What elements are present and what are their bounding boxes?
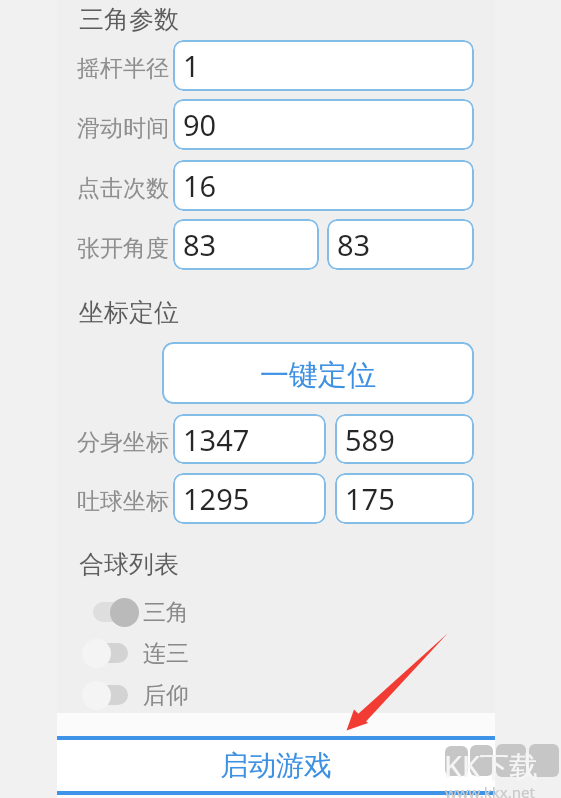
staticText: www.kkx.net	[445, 782, 535, 798]
button[interactable]: 83	[173, 219, 319, 270]
staticText: 90	[183, 105, 217, 144]
button[interactable]: 三角	[86, 595, 206, 629]
staticText: 坐标定位	[79, 297, 179, 328]
button[interactable]: 83	[327, 219, 474, 270]
staticText: 一键定位	[260, 357, 376, 394]
staticText: 1295	[183, 479, 250, 518]
staticText: 吐球坐标	[77, 487, 169, 516]
staticText: 三角参数	[79, 4, 179, 35]
staticText: KK下载	[444, 746, 538, 786]
staticText: 589	[345, 420, 395, 459]
staticText: 张开角度	[77, 234, 169, 263]
button[interactable]: 589	[335, 414, 474, 464]
button[interactable]: 1347	[173, 414, 326, 464]
button[interactable]: 1295	[173, 473, 326, 524]
staticText: 83	[183, 225, 217, 264]
staticText: 摇杆半径	[77, 54, 169, 83]
staticText: 1347	[183, 420, 250, 459]
button[interactable]: 1	[173, 40, 474, 91]
staticText: 三角	[143, 598, 189, 627]
staticText: 83	[337, 225, 371, 264]
button[interactable]: 启动游戏	[57, 736, 495, 795]
button[interactable]: 16	[173, 160, 474, 211]
staticText: 启动游戏	[220, 748, 332, 783]
staticText: 点击次数	[77, 174, 169, 203]
button[interactable]: 连三	[86, 636, 206, 670]
staticText: 连三	[143, 639, 189, 668]
staticText: 滑动时间	[77, 114, 169, 143]
button[interactable]: 175	[335, 473, 474, 524]
staticText: 合球列表	[79, 549, 179, 580]
staticText: 16	[183, 166, 217, 205]
staticText: 分身坐标	[77, 428, 169, 457]
staticText: 1	[183, 46, 200, 85]
button[interactable]: 后仰	[86, 678, 206, 712]
button[interactable]: 一键定位	[162, 342, 474, 404]
staticText: 175	[345, 479, 395, 518]
button[interactable]: 90	[173, 99, 474, 150]
staticText: 后仰	[143, 681, 189, 710]
